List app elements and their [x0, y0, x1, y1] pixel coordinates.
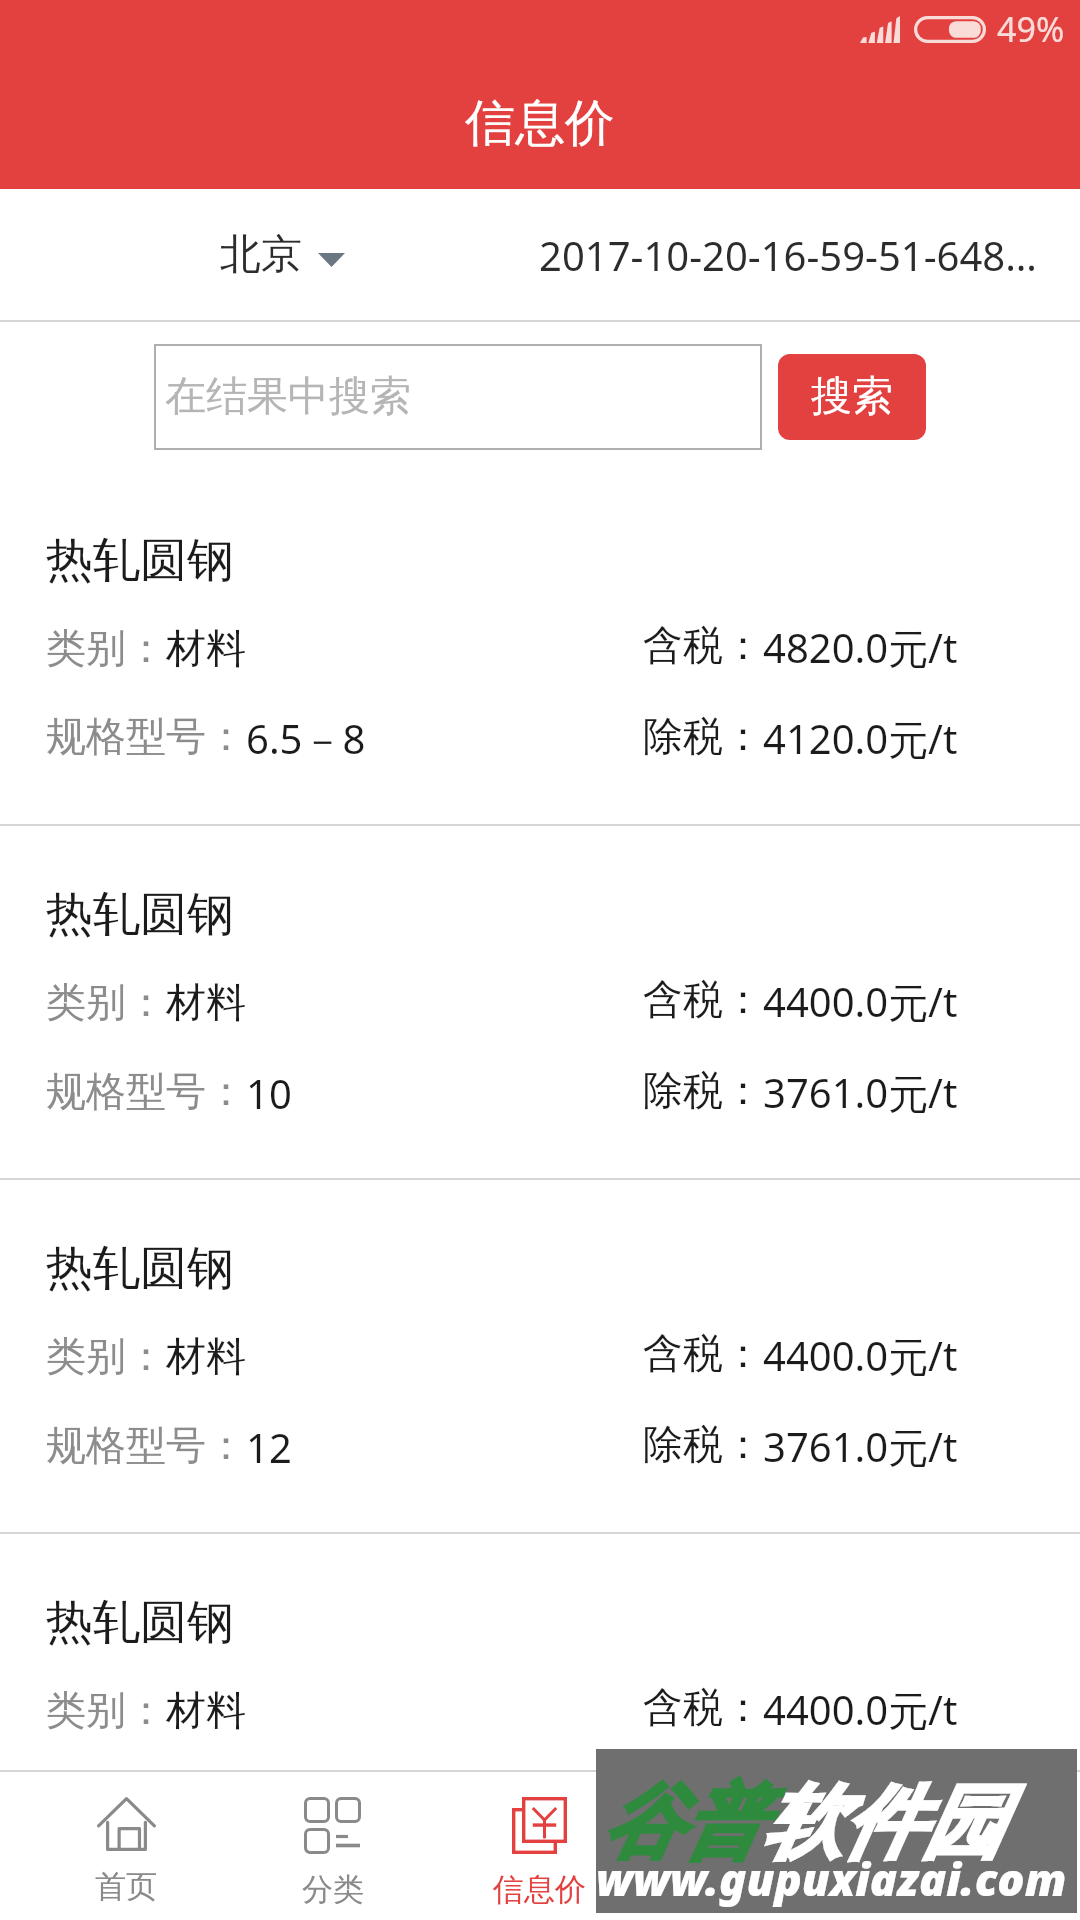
staticText: 材料 — [166, 1331, 246, 1381]
staticText: 规格型号： — [46, 1420, 246, 1470]
staticText: 搜索 — [811, 371, 893, 423]
staticText: 软件园 — [762, 1773, 1002, 1874]
staticText: 3761.0元/t — [763, 1065, 958, 1120]
staticText: 在结果中搜索 — [165, 371, 411, 423]
staticText: 4400.0元/t — [763, 974, 958, 1029]
staticText: 除税： — [643, 1773, 763, 1823]
button[interactable]: 热轧圆钢 — [0, 826, 1080, 1178]
staticText: 除税： — [643, 1419, 763, 1469]
staticText: 4120.0元/t — [763, 711, 958, 766]
button[interactable]: 指标 — [643, 1772, 850, 1920]
staticText: 类别： — [46, 623, 166, 673]
other: Signal strength — [860, 16, 900, 43]
staticText: 2017-10-20-16-59-51-648… — [539, 228, 1037, 282]
staticText: 规格型号： — [46, 711, 246, 761]
staticText: 谷普 — [602, 1773, 762, 1874]
other: Battery 49 percent — [914, 16, 986, 43]
staticText: 除税： — [643, 711, 763, 761]
staticText: 首页 — [95, 1867, 157, 1906]
staticText: 指标 — [716, 1869, 778, 1908]
staticText: 类别： — [46, 1685, 166, 1735]
staticText: 4400.0元/t — [763, 1682, 958, 1737]
staticText: 含税： — [643, 1328, 763, 1378]
staticText: 信息价 — [465, 92, 615, 155]
staticText: 10 — [246, 1066, 292, 1120]
button[interactable]: 2017-10-20-16-59-51-648… — [540, 189, 1080, 320]
staticText: 含税： — [643, 974, 763, 1024]
button[interactable]: 我的 — [850, 1772, 1057, 1920]
staticText: 热轧圆钢 — [46, 885, 234, 944]
staticText: 含税： — [643, 620, 763, 670]
button[interactable]: 分类 — [229, 1772, 436, 1920]
staticText: 含税： — [643, 1682, 763, 1732]
button[interactable]: 热轧圆钢 — [0, 1534, 1080, 1886]
staticText: 热轧圆钢 — [46, 531, 234, 590]
staticText: 类别： — [46, 977, 166, 1027]
button[interactable]: 热轧圆钢 — [0, 1180, 1080, 1532]
staticText: 分类 — [302, 1870, 364, 1909]
staticText: 我的 — [923, 1871, 985, 1910]
staticText: 3761.0元/t — [763, 1419, 958, 1474]
staticText: 北京 — [220, 229, 302, 281]
staticText: 4820.0元/t — [763, 620, 958, 675]
staticText: 材料 — [166, 1685, 246, 1735]
button[interactable]: 首页 — [23, 1772, 229, 1920]
staticText: www.gupuxiazai.com — [596, 1848, 1067, 1909]
button[interactable]: 信息价 — [436, 1772, 643, 1920]
staticText: 类别： — [46, 1331, 166, 1381]
staticText: 信息价 — [493, 1870, 586, 1909]
staticText: 49% — [997, 6, 1065, 52]
button[interactable]: 选择城市 北京 — [0, 189, 540, 320]
staticText: 12 — [246, 1420, 292, 1474]
button[interactable]: 在结果中搜索 — [154, 344, 762, 450]
staticText: 材料 — [166, 623, 246, 673]
button[interactable]: 搜索 — [778, 354, 926, 440]
staticText: 规格型号： — [46, 1066, 246, 1116]
staticText: 热轧圆钢 — [46, 1593, 234, 1652]
staticText: 热轧圆钢 — [46, 1239, 234, 1298]
staticText: 除税： — [643, 1065, 763, 1115]
staticText: 规格型号： — [46, 1774, 246, 1824]
staticText: 3761.0元/t — [763, 1773, 958, 1828]
staticText: 材料 — [166, 977, 246, 1027]
staticText: 6.5－8 — [246, 711, 366, 766]
button[interactable]: 热轧圆钢 — [0, 472, 1080, 824]
staticText: 4400.0元/t — [763, 1328, 958, 1383]
